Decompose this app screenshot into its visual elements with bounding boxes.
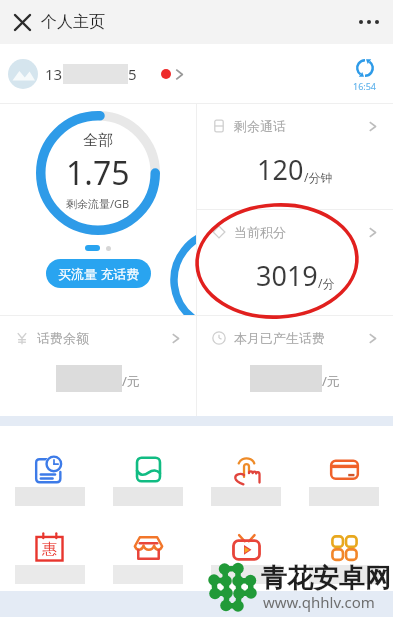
staticText: 120	[257, 151, 304, 188]
button[interactable]: All services	[295, 529, 393, 584]
staticText: /分钟	[304, 169, 333, 185]
staticText: /分	[318, 275, 335, 291]
staticText: 当前积分	[234, 224, 286, 240]
staticText: 13	[45, 64, 63, 84]
staticText: 惠	[42, 540, 57, 559]
staticText: 买流量 充话费	[58, 265, 140, 283]
button[interactable]: Refresh	[353, 56, 377, 80]
staticText: 个人主页	[41, 12, 105, 32]
button[interactable]: 买流量 充话费	[46, 259, 151, 288]
button[interactable]: Store	[99, 529, 197, 584]
button[interactable]: Promotions	[0, 529, 99, 584]
staticText: 1.75	[66, 151, 130, 195]
staticText: 本月已产生话费	[234, 330, 325, 346]
button[interactable]: More options	[353, 6, 385, 38]
button[interactable]: Tap service	[197, 451, 295, 506]
button[interactable]: Data usage	[99, 451, 197, 506]
button[interactable]: 当前积分	[197, 210, 393, 315]
button[interactable]: 剩余通话	[197, 104, 393, 209]
staticText: 青花安卓网	[261, 562, 391, 595]
staticText: 16:54	[353, 80, 377, 92]
button[interactable]: Video	[197, 529, 295, 584]
staticText: www.qhhlv.com	[263, 592, 375, 612]
button[interactable]: Close	[6, 6, 38, 38]
staticText: /元	[122, 372, 140, 390]
staticText: 全部	[83, 131, 113, 150]
staticText: 剩余流量/GB	[66, 196, 130, 211]
staticText: 3019	[256, 257, 318, 294]
button[interactable]: Bill details	[0, 451, 99, 506]
staticText: 话费余额	[37, 330, 89, 346]
button[interactable]: 话费余额	[0, 316, 196, 416]
button[interactable]: 本月已产生话费	[197, 316, 393, 416]
button[interactable]: Payment card	[295, 451, 393, 506]
staticText: 5	[128, 64, 137, 84]
staticText: 剩余通话	[234, 118, 286, 134]
staticText: /元	[322, 372, 340, 390]
